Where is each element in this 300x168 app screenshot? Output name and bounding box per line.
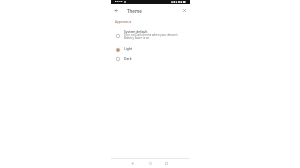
button[interactable]: Recent apps bbox=[162, 159, 170, 167]
button[interactable]: Light bbox=[111, 46, 190, 56]
button[interactable]: Home bbox=[146, 159, 154, 167]
staticText: Appearance bbox=[115, 20, 132, 24]
staticText: Battery Saver is on bbox=[124, 36, 150, 40]
staticText: Light bbox=[124, 46, 133, 50]
staticText: System default bbox=[124, 29, 148, 33]
button[interactable]: Close bbox=[180, 6, 188, 14]
button[interactable]: System default bbox=[111, 29, 190, 43]
staticText: Theme bbox=[127, 8, 142, 14]
staticText: Dark bbox=[124, 56, 132, 60]
button[interactable]: Back bbox=[128, 159, 136, 167]
button[interactable]: Navigate up bbox=[112, 6, 120, 14]
button[interactable]: Dark bbox=[111, 56, 190, 66]
staticText: Turn on Dark theme when your device's bbox=[124, 33, 178, 37]
